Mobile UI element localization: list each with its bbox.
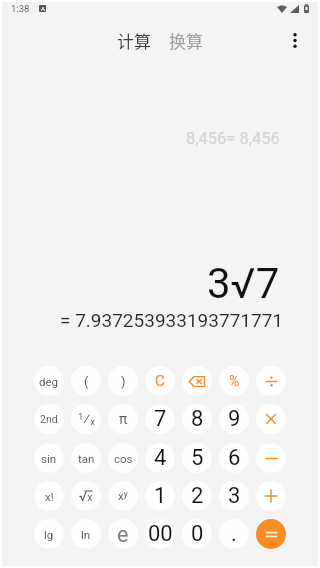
button[interactable]: 2 bbox=[182, 481, 212, 511]
button[interactable]: Divide bbox=[256, 366, 286, 396]
button[interactable]: 6 bbox=[219, 443, 249, 473]
button[interactable]: 9 bbox=[219, 404, 249, 434]
button[interactable]: Multiply bbox=[256, 404, 286, 434]
button[interactable]: 5 bbox=[182, 443, 212, 473]
button[interactable]: x! bbox=[34, 481, 64, 511]
button[interactable]: lg bbox=[34, 519, 64, 549]
staticText: A bbox=[41, 5, 45, 12]
button[interactable]: tan bbox=[71, 443, 101, 473]
button[interactable]: % bbox=[219, 366, 249, 396]
button[interactable]: x to the power y bbox=[108, 481, 138, 511]
button[interactable]: ( bbox=[71, 366, 101, 396]
button[interactable]: Minus bbox=[256, 443, 286, 473]
staticText: 00 bbox=[148, 521, 173, 547]
staticText: 2nd bbox=[40, 413, 58, 425]
staticText: 1⁄x bbox=[78, 410, 95, 428]
staticText: C bbox=[155, 372, 165, 390]
staticText: 3 bbox=[228, 483, 241, 509]
staticText: ) bbox=[121, 374, 126, 389]
button[interactable]: . bbox=[219, 519, 249, 549]
staticText: 8,456= 8,456 bbox=[186, 129, 280, 148]
staticText: 2 bbox=[191, 483, 204, 509]
button[interactable]: sin bbox=[34, 443, 64, 473]
staticText: 5 bbox=[191, 445, 204, 471]
button[interactable]: 0 bbox=[182, 519, 212, 549]
button[interactable]: e bbox=[108, 519, 138, 549]
button[interactable]: 4 bbox=[145, 443, 175, 473]
staticText: 计算 bbox=[117, 28, 151, 53]
staticText: 1 bbox=[154, 483, 167, 509]
button[interactable]: cos bbox=[108, 443, 138, 473]
staticText: ln bbox=[81, 528, 91, 541]
button[interactable]: Square root bbox=[71, 481, 101, 511]
button[interactable]: 3 bbox=[219, 481, 249, 511]
staticText: deg bbox=[39, 375, 59, 388]
button[interactable]: deg bbox=[34, 366, 64, 396]
staticText: . bbox=[231, 521, 237, 547]
staticText: xy bbox=[118, 489, 128, 503]
staticText: 1:38 bbox=[11, 3, 30, 14]
staticText: 7 bbox=[154, 406, 167, 432]
button[interactable]: 换算 bbox=[162, 22, 210, 59]
staticText: 9 bbox=[228, 406, 241, 432]
button[interactable]: Equals bbox=[256, 519, 286, 549]
staticText: ( bbox=[84, 374, 89, 389]
button[interactable]: ) bbox=[108, 366, 138, 396]
button[interactable]: Backspace bbox=[182, 366, 212, 396]
button[interactable]: 8 bbox=[182, 404, 212, 434]
button[interactable]: Plus bbox=[256, 481, 286, 511]
button[interactable]: 计算 bbox=[110, 22, 158, 59]
button[interactable]: 7 bbox=[145, 404, 175, 434]
staticText: 换算 bbox=[169, 28, 203, 53]
staticText: tan bbox=[78, 452, 95, 465]
staticText: 6 bbox=[228, 445, 241, 471]
staticText: 4 bbox=[154, 445, 167, 471]
staticText: 0 bbox=[191, 521, 204, 547]
staticText: π bbox=[119, 411, 128, 427]
staticText: √x bbox=[79, 488, 93, 504]
button[interactable]: π bbox=[108, 404, 138, 434]
button[interactable]: One over x bbox=[71, 404, 101, 434]
staticText: e bbox=[117, 522, 129, 547]
button[interactable]: 00 bbox=[145, 519, 175, 549]
staticText: cos bbox=[114, 452, 133, 465]
staticText: = 7.937253933193771771 bbox=[60, 309, 284, 331]
button[interactable]: 2nd bbox=[34, 404, 64, 434]
button[interactable]: 1 bbox=[145, 481, 175, 511]
button[interactable]: ln bbox=[71, 519, 101, 549]
staticText: % bbox=[229, 373, 240, 389]
staticText: 8 bbox=[191, 406, 204, 432]
staticText: lg bbox=[44, 528, 54, 541]
button[interactable]: More options bbox=[275, 20, 315, 60]
button[interactable]: C bbox=[145, 366, 175, 396]
staticText: 3√7 bbox=[207, 259, 280, 308]
staticText: x! bbox=[45, 490, 54, 503]
staticText: sin bbox=[41, 452, 57, 465]
